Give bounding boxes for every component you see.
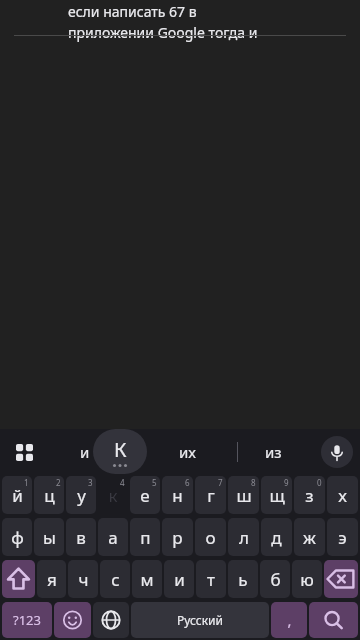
staticText: 0	[317, 477, 322, 488]
button[interactable]: в	[66, 518, 96, 556]
button[interactable]: Search	[309, 602, 358, 638]
button[interactable]: щ	[261, 476, 292, 514]
staticText: а	[108, 526, 118, 549]
button[interactable]: т	[196, 560, 226, 598]
button[interactable]: о	[195, 518, 226, 556]
staticText: б	[270, 568, 281, 591]
staticText: 2	[56, 477, 61, 488]
button[interactable]: с	[100, 560, 130, 598]
staticText: г	[207, 484, 215, 507]
staticText: 6	[185, 477, 190, 488]
staticText: е	[140, 484, 150, 507]
button[interactable]: Emoji	[54, 602, 91, 638]
staticText: ж	[303, 526, 316, 549]
button[interactable]: ч	[68, 560, 98, 598]
button[interactable]: Backspace	[324, 560, 358, 598]
button[interactable]: й	[2, 476, 32, 514]
staticText: 3	[88, 477, 93, 488]
staticText: п	[140, 526, 151, 549]
button[interactable]: е	[130, 476, 160, 514]
button[interactable]: я	[37, 560, 66, 598]
staticText: Русский	[177, 612, 223, 628]
staticText: я	[47, 568, 57, 591]
button[interactable]: д	[261, 518, 292, 556]
button[interactable]: Change language	[93, 602, 129, 638]
staticText: и	[80, 442, 90, 462]
staticText: их	[179, 442, 196, 462]
staticText: з	[305, 484, 314, 507]
button[interactable]: из	[249, 429, 297, 474]
button[interactable]: н	[162, 476, 193, 514]
button[interactable]: з	[294, 476, 325, 514]
button[interactable]: и	[62, 429, 108, 474]
staticText: м	[140, 568, 154, 591]
button[interactable]: ы	[34, 518, 64, 556]
staticText: л	[239, 526, 249, 549]
button[interactable]: Русский	[131, 602, 269, 638]
button[interactable]: х	[327, 476, 358, 514]
button[interactable]: э	[327, 518, 358, 556]
staticText: к	[108, 484, 118, 507]
staticText: К	[114, 436, 127, 463]
button[interactable]: м	[132, 560, 162, 598]
button[interactable]: их	[163, 429, 211, 474]
staticText: й	[12, 484, 23, 507]
staticText: р	[172, 526, 183, 549]
staticText: ?123	[13, 611, 41, 629]
button[interactable]: б	[260, 560, 290, 598]
button[interactable]: л	[228, 518, 259, 556]
staticText: и	[174, 568, 185, 591]
button[interactable]: и	[164, 560, 194, 598]
staticText: приложении Google тогда и	[68, 23, 258, 42]
staticText: ч	[78, 568, 89, 591]
button[interactable]: ж	[294, 518, 325, 556]
button[interactable]: ю	[292, 560, 322, 598]
staticText: из	[265, 442, 282, 462]
staticText: 8	[251, 477, 256, 488]
staticText: ы	[43, 526, 56, 549]
button[interactable]: а	[98, 518, 128, 556]
staticText: ш	[236, 484, 252, 507]
staticText: э	[338, 526, 347, 549]
button[interactable]: ц	[34, 476, 64, 514]
button[interactable]: Toolbar	[8, 436, 40, 468]
button[interactable]: Shift	[2, 560, 35, 598]
button[interactable]: ,	[271, 602, 307, 638]
button[interactable]: ь	[228, 560, 258, 598]
button[interactable]: г	[195, 476, 226, 514]
button[interactable]: у	[66, 476, 96, 514]
staticText: н	[172, 484, 183, 507]
button[interactable]: р	[162, 518, 193, 556]
staticText: 7	[218, 477, 223, 488]
staticText: х	[338, 484, 347, 507]
staticText: 1	[24, 477, 29, 488]
staticText: д	[271, 526, 282, 549]
staticText: т	[207, 568, 215, 591]
button[interactable]: ф	[2, 518, 32, 556]
staticText: о	[205, 526, 216, 549]
staticText: ц	[44, 484, 55, 507]
staticText: ю	[300, 568, 314, 591]
button[interactable]: ш	[228, 476, 259, 514]
button[interactable]: п	[130, 518, 160, 556]
staticText: если написать 67 в	[68, 2, 197, 21]
staticText: с	[111, 568, 120, 591]
button[interactable]: к	[98, 476, 128, 514]
staticText: у	[77, 484, 86, 507]
staticText: 9	[284, 477, 289, 488]
staticText: 4	[120, 477, 125, 488]
staticText: ,	[287, 610, 292, 630]
staticText: 5	[152, 477, 157, 488]
staticText: щ	[269, 484, 285, 507]
staticText: ф	[11, 526, 24, 549]
button[interactable]: Voice input	[321, 436, 353, 468]
button[interactable]: ?123	[2, 602, 52, 638]
staticText: ь	[238, 568, 248, 591]
staticText: в	[76, 526, 86, 549]
